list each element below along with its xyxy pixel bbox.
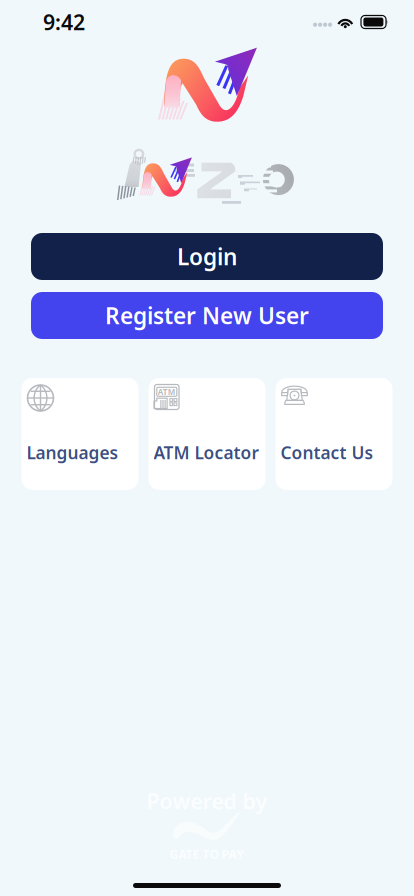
staticText: 9:42 [43, 8, 85, 36]
button[interactable]: Contact Us [275, 378, 392, 490]
staticText: Contact Us [280, 441, 373, 464]
button[interactable]: Login [31, 233, 383, 280]
staticText: ATM [158, 387, 176, 397]
button[interactable]: ATM [148, 378, 265, 490]
button[interactable]: Register New User [31, 292, 383, 339]
staticText: Login [177, 241, 237, 271]
staticText: Powered by [146, 787, 267, 815]
button[interactable]: Languages [21, 378, 138, 490]
staticText: ATM Locator [153, 441, 259, 464]
staticText: Register New User [105, 300, 309, 330]
staticText: GATE TO PAY [169, 846, 244, 862]
staticText: Languages [26, 441, 118, 464]
